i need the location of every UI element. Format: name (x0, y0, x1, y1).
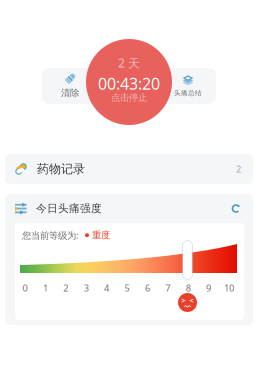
staticText: 2 (63, 282, 68, 294)
staticText: 2 (236, 163, 241, 175)
staticText: 清除 (61, 87, 79, 99)
staticText: 药物记录 (37, 162, 85, 176)
staticText: 您当前等级为: (22, 229, 79, 241)
button[interactable]: 清除 (42, 68, 98, 104)
staticText: 1 (43, 282, 48, 294)
staticText: 00:43:20 (98, 73, 160, 94)
staticText: 5 (124, 282, 129, 294)
button[interactable]: 刷新 (231, 203, 241, 213)
staticText: 8 (186, 282, 191, 294)
staticText: 0 (22, 282, 27, 294)
button[interactable]: 2 天 (86, 39, 172, 125)
staticText: 9 (206, 282, 211, 294)
staticText: 重度 (92, 229, 110, 241)
staticText: 6 (145, 282, 150, 294)
button[interactable]: 头痛总结 (160, 68, 216, 104)
staticText: 7 (165, 282, 170, 294)
staticText: 4 (104, 282, 109, 294)
staticText: 头痛总结 (174, 89, 202, 97)
staticText: 10 (224, 282, 234, 294)
staticText: 点击停止 (111, 92, 147, 103)
staticText: 3 (84, 282, 89, 294)
button[interactable]: 药物记录 (5, 154, 253, 184)
staticText: 今日头痛强度 (36, 202, 102, 215)
staticText: 2 天 (118, 55, 140, 71)
